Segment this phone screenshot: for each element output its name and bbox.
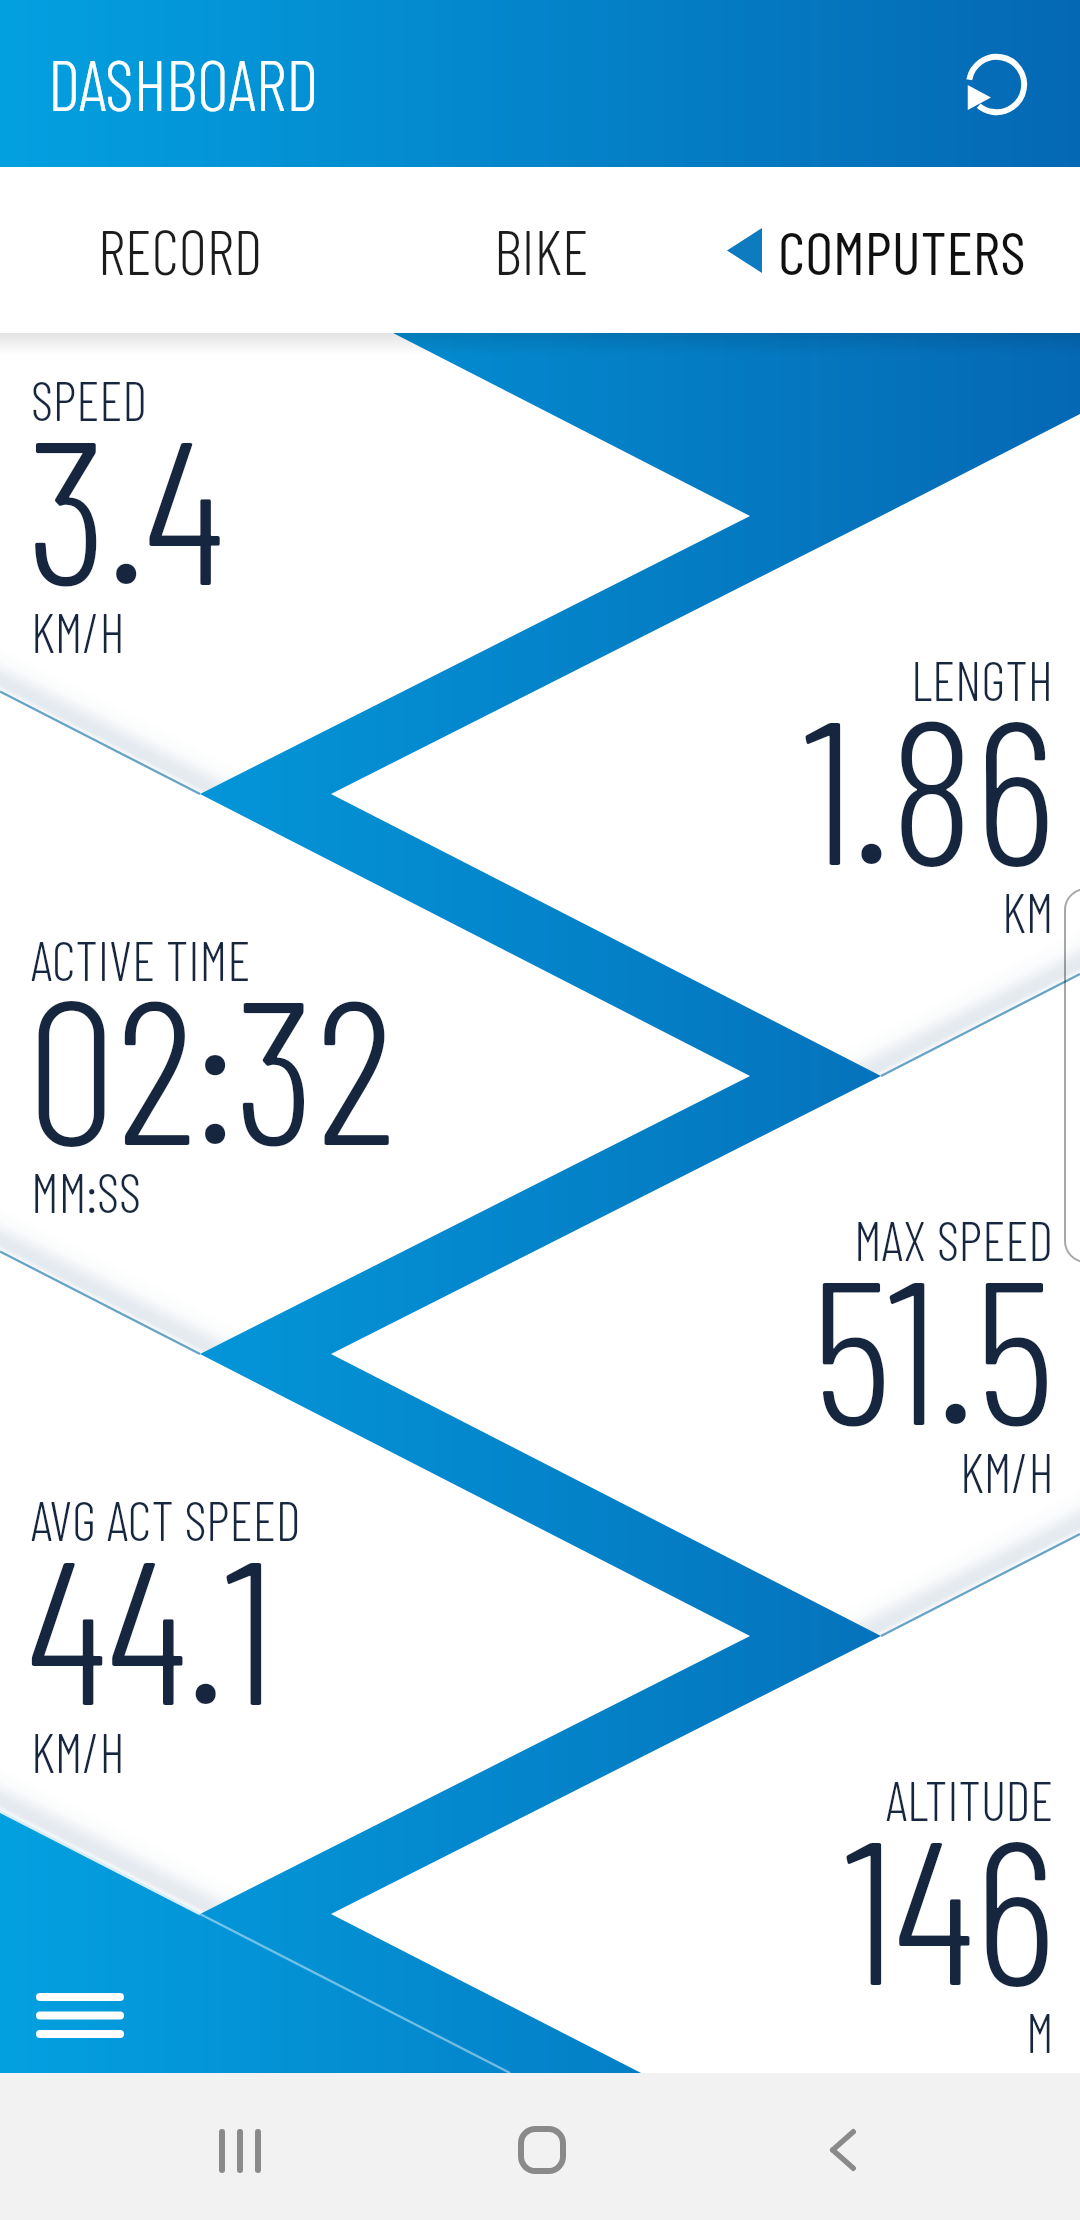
button[interactable]: SPEED [0,367,1080,739]
staticText: KM/H [31,599,125,664]
staticText: ALTITUDE [886,1767,1054,1832]
staticText: 1.86 [803,663,1056,905]
button[interactable]: Refresh [946,34,1046,134]
staticText: KM/H [31,1719,125,1784]
staticText: ACTIVE TIME [31,927,251,992]
staticText: MAX SPEED [854,1207,1054,1272]
staticText: SPEED [31,367,148,432]
button[interactable]: Home [452,2076,632,2220]
staticText: AVG ACT SPEED [31,1487,301,1552]
staticText: 146 [844,1783,1056,2025]
staticText: COMPUTERS [778,214,1026,287]
staticText: BIKE [494,213,589,287]
staticText: LENGTH [911,647,1054,712]
button[interactable]: LENGTH [0,647,1080,1019]
staticText: 44.1 [27,1503,275,1745]
button[interactable]: RECORD [0,167,360,333]
staticText: DASHBOARD [48,41,319,125]
button[interactable]: Recent apps [150,2077,330,2220]
button[interactable]: AVG ACT SPEED [0,1487,1080,1859]
staticText: 3.4 [27,383,225,625]
staticText: KM/H [960,1439,1054,1504]
button[interactable]: ALTITUDE [0,1767,1080,2139]
button[interactable]: MAX SPEED [0,1207,1080,1579]
button[interactable]: Back [753,2076,933,2220]
staticText: KM [1002,879,1054,944]
staticText: 02:32 [27,943,395,1185]
button[interactable]: Menu [10,1965,150,2065]
staticText: RECORD [98,213,263,287]
staticText: M [1026,1999,1054,2064]
button[interactable]: BIKE [360,167,722,333]
button[interactable]: ACTIVE TIME [0,927,1080,1299]
staticText: MM:SS [31,1159,142,1224]
button[interactable]: COMPUTERS [722,167,1080,333]
staticText: 51.5 [811,1223,1056,1465]
